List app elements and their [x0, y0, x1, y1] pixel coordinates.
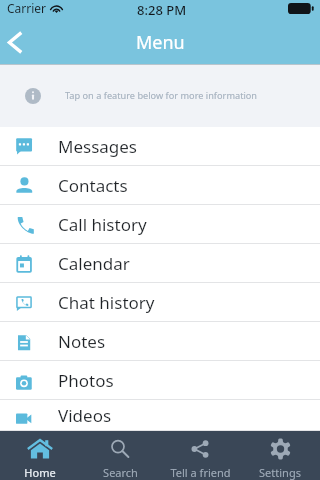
- staticText: Settings: [259, 465, 301, 480]
- button[interactable]: Calendar: [0, 244, 320, 283]
- staticText: Notes: [58, 330, 106, 353]
- staticText: Messages: [58, 135, 138, 158]
- button[interactable]: Chat history: [0, 283, 320, 322]
- staticText: Menu: [136, 30, 185, 55]
- button[interactable]: Messages: [0, 127, 320, 166]
- button[interactable]: Contacts: [0, 166, 320, 205]
- staticText: Search: [103, 465, 138, 480]
- button[interactable]: Tell a friend: [160, 431, 240, 480]
- button[interactable]: Search: [80, 431, 160, 480]
- staticText: Calendar: [58, 252, 130, 275]
- staticText: 8:28 PM: [137, 1, 187, 19]
- button[interactable]: Settings: [240, 431, 320, 480]
- staticText: Tell a friend: [170, 465, 231, 480]
- staticText: Chat history: [58, 291, 155, 314]
- button[interactable]: Notes: [0, 322, 320, 361]
- staticText: Call history: [58, 213, 147, 236]
- staticText: Home: [24, 465, 56, 480]
- staticText: Photos: [58, 369, 114, 392]
- button[interactable]: Call history: [0, 205, 320, 244]
- button[interactable]: Photos: [0, 361, 320, 400]
- button[interactable]: Home: [0, 431, 80, 480]
- button[interactable]: Videos: [0, 400, 320, 431]
- staticText: Tap on a feature below for more informat…: [65, 89, 258, 102]
- staticText: Videos: [58, 404, 112, 427]
- button[interactable]: Back: [0, 20, 40, 64]
- staticText: Contacts: [58, 174, 128, 197]
- staticText: Carrier: [7, 0, 47, 16]
